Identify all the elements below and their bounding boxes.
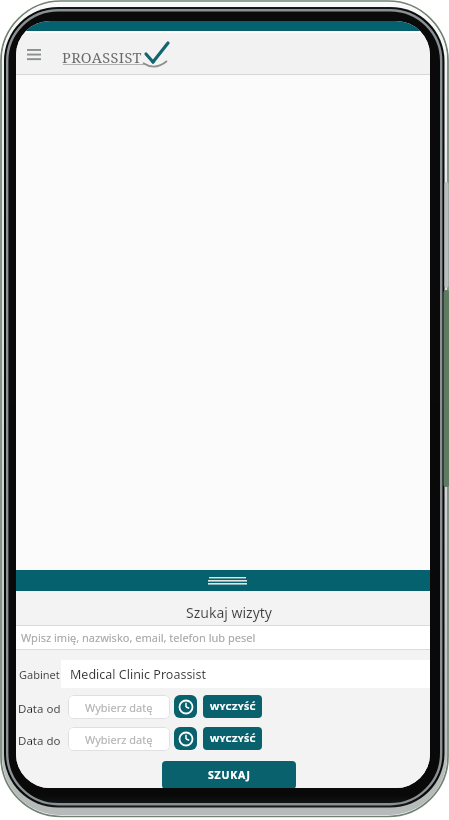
button[interactable] (22, 45, 46, 63)
button[interactable]: SZUKAJ (162, 761, 296, 788)
staticText: WYCZYŚĆ (210, 700, 256, 713)
button[interactable] (174, 727, 197, 750)
button[interactable]: Wpisz imię, nazwisko, email, telefon lub… (16, 626, 430, 649)
staticText: WYCZYŚĆ (210, 732, 256, 745)
button[interactable] (16, 570, 430, 591)
button[interactable]: Wybierz datę (68, 727, 170, 751)
staticText: SZUKAJ (208, 768, 251, 782)
staticText: Data do (18, 733, 61, 749)
button[interactable]: WYCZYŚĆ (203, 695, 262, 718)
staticText: Data od (18, 701, 61, 717)
staticText: Medical Clinic Proassist (70, 666, 207, 683)
button[interactable]: Medical Clinic Proassist (61, 660, 430, 688)
staticText: Wpisz imię, nazwisko, email, telefon lub… (21, 630, 256, 645)
staticText: Wybierz datę (85, 700, 153, 715)
staticText: Wybierz datę (85, 732, 153, 747)
button[interactable]: Wybierz datę (68, 695, 170, 719)
button[interactable] (174, 695, 197, 718)
staticText: Szukaj wizyty (22, 603, 430, 622)
button[interactable]: WYCZYŚĆ (203, 727, 262, 750)
staticText: Gabinet (19, 667, 60, 682)
staticText: PROASSIST (62, 47, 142, 67)
